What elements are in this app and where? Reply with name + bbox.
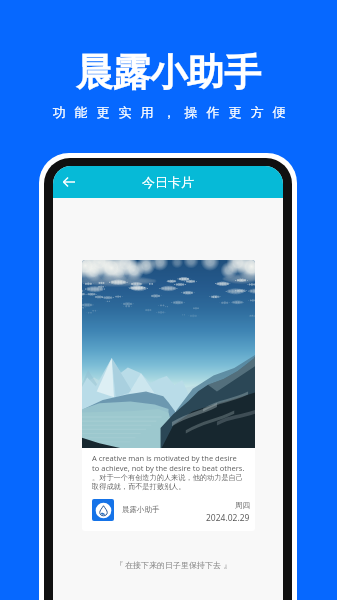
staticText: 2024.02.29 — [206, 512, 250, 524]
staticText: 『 在接下来的日子里保持下去 』 — [115, 559, 232, 570]
staticText: 周四 — [235, 501, 250, 510]
staticText: 今日卡片 — [142, 174, 194, 190]
button[interactable]: A creative man is motivated by the desir… — [82, 260, 255, 531]
staticText: 晨露小助手 — [76, 49, 261, 96]
staticText: 功能更实用，操作更方便 — [48, 104, 290, 120]
staticText: A creative man is motivated by the desir… — [92, 453, 245, 473]
staticText: 。对于一个有创造力的人来说，他的动力是自己取得成就，而不是打败别人。 — [92, 473, 245, 491]
staticText: 晨露小助手 — [122, 505, 160, 514]
button[interactable]: Back — [57, 170, 81, 194]
